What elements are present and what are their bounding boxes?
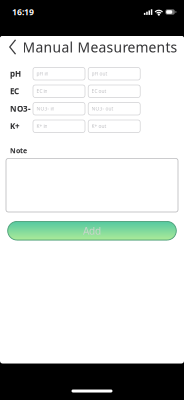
button[interactable]: EC out	[88, 85, 140, 97]
staticText: Add	[83, 224, 101, 237]
button[interactable]: NO3- out	[88, 102, 140, 115]
staticText: pH out	[92, 70, 108, 77]
staticText: pH in	[36, 70, 48, 77]
staticText: pH	[10, 68, 21, 79]
staticText: NO3- out	[92, 105, 114, 112]
staticText: Manual Measurements	[22, 38, 177, 56]
staticText: K+	[10, 121, 20, 132]
button[interactable]: pH in	[33, 67, 85, 80]
staticText: EC in	[36, 88, 47, 94]
staticText: Note	[10, 146, 27, 155]
staticText: K+ in	[36, 123, 47, 129]
staticText: K+ out	[92, 123, 107, 129]
staticText: EC	[10, 86, 19, 97]
staticText: NO3- in	[36, 105, 54, 112]
button[interactable]: Add	[7, 221, 177, 240]
button[interactable]: pH out	[88, 67, 140, 80]
button[interactable]: EC in	[33, 85, 85, 97]
button[interactable]: Back	[5, 36, 20, 58]
button[interactable]: K+ in	[33, 120, 85, 132]
staticText: EC out	[92, 88, 107, 94]
staticText: NO3-	[10, 103, 31, 114]
button[interactable]: K+ out	[88, 120, 140, 132]
button[interactable]: NO3- in	[33, 102, 85, 115]
staticText: 16:19	[12, 6, 34, 18]
